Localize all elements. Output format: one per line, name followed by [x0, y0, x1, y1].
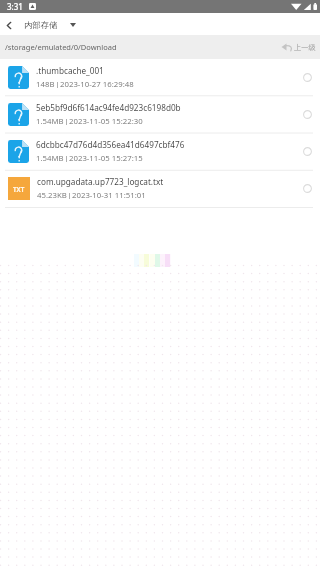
button[interactable]: 上一级 — [281, 42, 316, 53]
button[interactable]: 6dcbbc47d76d4d356ea41d6497cbf476 — [0, 133, 320, 170]
staticText: 2023-10-27 16:29:48 — [60, 79, 134, 90]
staticText: 3:31 — [7, 1, 23, 12]
button[interactable]: Change storage — [67, 19, 79, 31]
staticText: 内部存储 — [24, 20, 58, 30]
button[interactable]: Back — [0, 16, 18, 34]
staticText: com.upgadata.up7723_logcat.txt — [37, 176, 164, 187]
staticText: 2023-11-05 15:22:30 — [69, 116, 143, 127]
staticText: 1.54MB — [36, 153, 64, 164]
button[interactable]: .thumbcache_001 — [0, 59, 320, 96]
button[interactable]: 5eb5bf9d6f614ac94fe4d923c6198d0b — [0, 96, 320, 133]
staticText: 2023-10-31 11:51:01 — [72, 190, 146, 201]
staticText: 148B — [36, 79, 55, 90]
staticText: 1.54MB — [36, 116, 64, 127]
staticText: 6dcbbc47d76d4d356ea41d6497cbf476 — [36, 139, 185, 150]
staticText: 上一级 — [294, 43, 316, 52]
staticText: .thumbcache_001 — [36, 65, 104, 76]
staticText: 5eb5bf9d6f614ac94fe4d923c6198d0b — [36, 102, 181, 113]
staticText: /storage/emulated/0/Download — [5, 42, 117, 52]
staticText: 45.23KB — [37, 190, 67, 201]
button[interactable]: TXT — [0, 170, 320, 207]
staticText: TXT — [13, 185, 25, 193]
staticText: 2023-11-05 15:27:15 — [69, 153, 143, 164]
